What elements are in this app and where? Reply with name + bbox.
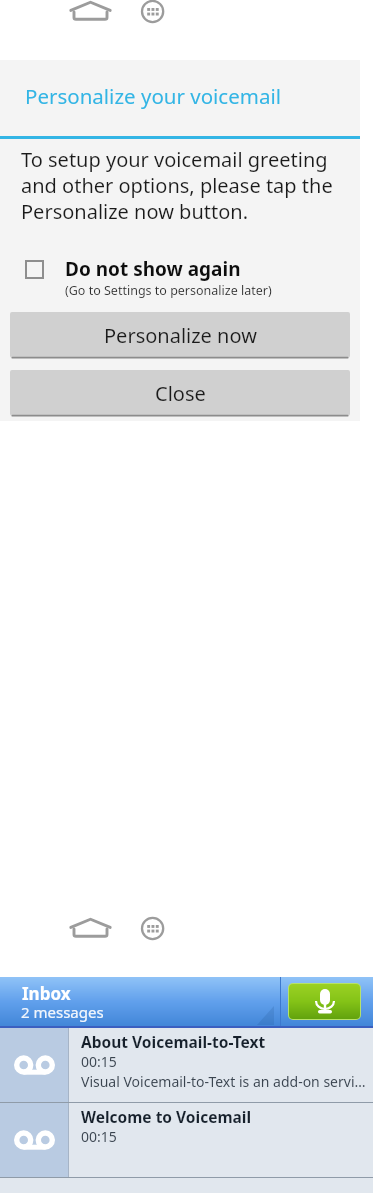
button[interactable]: Home	[69, 0, 113, 24]
staticText: Do not show again	[65, 256, 241, 282]
staticText: Close	[155, 380, 206, 407]
button[interactable]: Apps	[141, 917, 165, 941]
button[interactable]: Home	[69, 917, 113, 941]
staticText: Inbox	[22, 982, 71, 1005]
button[interactable]: Inbox	[0, 977, 280, 1026]
staticText: 2 messages	[21, 1002, 104, 1022]
staticText: About Voicemail-to-Text	[81, 1031, 266, 1052]
button[interactable]: Close	[10, 370, 350, 417]
button[interactable]: Welcome to Voicemail	[0, 1103, 373, 1177]
staticText: To setup your voicemail greeting and oth…	[21, 146, 339, 225]
staticText: Visual Voicemail-to-Text is an add-on se…	[81, 1072, 367, 1091]
button[interactable]: About Voicemail-to-Text	[0, 1028, 373, 1102]
button[interactable]: Personalize now	[10, 312, 350, 359]
staticText: (Go to Settings to personalize later)	[65, 282, 272, 299]
button[interactable]: Record voicemail	[289, 984, 360, 1019]
button[interactable]: Apps	[141, 0, 165, 24]
staticText: 00:15	[81, 1052, 117, 1071]
staticText: 00:15	[81, 1127, 117, 1146]
button[interactable]: Do not show again	[0, 253, 360, 303]
staticText: Personalize your voicemail	[25, 82, 282, 110]
staticText: Welcome to Voicemail	[81, 1106, 252, 1127]
staticText: Personalize now	[104, 322, 257, 349]
